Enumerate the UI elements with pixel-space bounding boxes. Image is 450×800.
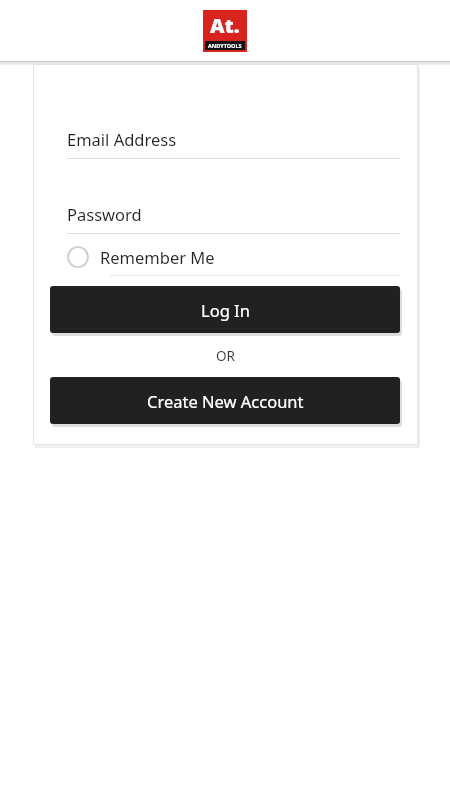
button[interactable]: Password (67, 195, 400, 233)
button[interactable]: Create New Account (50, 377, 400, 424)
staticText: At. (210, 12, 240, 39)
staticText: ANDYTOOLS (208, 42, 242, 49)
staticText: Password (67, 203, 142, 225)
button[interactable]: Email Address (67, 120, 400, 158)
staticText: Create New Account (147, 390, 304, 412)
staticText: Remember Me (100, 246, 215, 268)
button[interactable]: Log In (50, 286, 400, 333)
staticText: Email Address (67, 128, 177, 150)
button[interactable]: Remember Me (67, 242, 400, 272)
staticText: Log In (201, 299, 250, 321)
other: AndyTools logo (203, 10, 247, 52)
staticText: OR (216, 347, 235, 365)
